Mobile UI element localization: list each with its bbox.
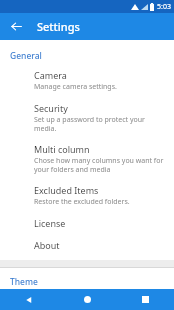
staticText: Multi column [34, 143, 90, 155]
button[interactable]: Home [58, 289, 116, 310]
staticText: Manage camera settings. [34, 82, 117, 92]
button[interactable]: Excluded Items [0, 179, 174, 212]
button[interactable]: Back [0, 289, 58, 310]
button[interactable]: Camera [0, 64, 174, 97]
button[interactable]: Back [6, 16, 27, 37]
button[interactable]: License [0, 212, 174, 234]
staticText: Excluded Items [34, 184, 99, 196]
staticText: License [34, 217, 66, 229]
staticText: Security [34, 102, 68, 114]
staticText: Set up a password to protect your media. [34, 115, 166, 133]
staticText: Camera [34, 69, 67, 81]
button[interactable]: Recent apps [116, 289, 174, 310]
staticText: About [34, 239, 60, 251]
staticText: Theme [10, 276, 38, 287]
staticText: Settings [37, 19, 80, 34]
staticText: General [10, 50, 42, 62]
staticText: 5:03 [157, 2, 171, 12]
staticText: Chose how many columns you want for your… [34, 156, 166, 174]
button[interactable]: Multi column [0, 138, 174, 179]
button[interactable]: About [0, 234, 174, 256]
button[interactable]: Security [0, 97, 174, 138]
staticText: Restore the excluded folders. [34, 197, 130, 207]
